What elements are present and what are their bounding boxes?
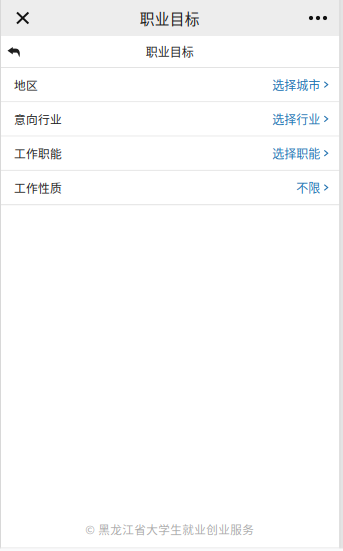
button[interactable]: Close <box>0 0 39 36</box>
button[interactable]: More options <box>299 0 339 36</box>
button[interactable]: 意向行业 <box>0 102 339 137</box>
staticText: © 黑龙江省大学生就业创业服务 <box>85 521 254 537</box>
staticText: 不限 <box>296 179 320 196</box>
staticText: 地区 <box>14 76 38 93</box>
staticText: 职业目标 <box>140 7 200 29</box>
staticText: 选择行业 <box>272 110 320 128</box>
staticText: 意向行业 <box>14 110 62 127</box>
staticText: 选择职能 <box>272 145 320 162</box>
button[interactable]: 工作性质 <box>0 171 339 205</box>
staticText: 选择城市 <box>272 76 320 93</box>
staticText: 工作职能 <box>14 145 62 162</box>
staticText: 职业目标 <box>146 43 194 60</box>
button[interactable]: 工作职能 <box>0 137 339 171</box>
staticText: 工作性质 <box>14 179 62 196</box>
button[interactable]: Back <box>0 36 32 67</box>
button[interactable]: 地区 <box>0 68 339 102</box>
